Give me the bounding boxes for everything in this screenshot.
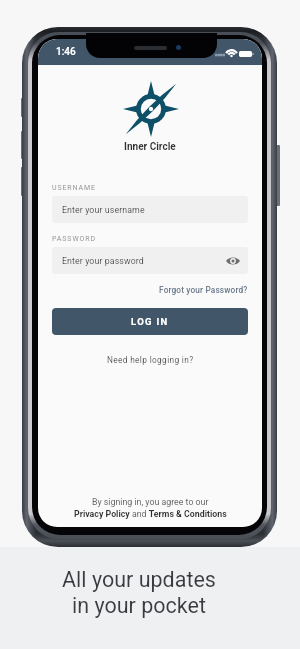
staticText: Inner Circle	[124, 141, 176, 153]
button[interactable]: Enter your password	[52, 247, 248, 274]
staticText: Enter your username	[62, 205, 145, 215]
staticText: PASSWORD	[52, 235, 96, 243]
staticText: USERNAME	[52, 184, 96, 192]
button[interactable]: Need help logging in?	[107, 355, 194, 365]
button[interactable]: Privacy Policy and Terms & Conditions	[74, 509, 227, 519]
staticText: Forgot your Password?	[159, 285, 248, 295]
staticText: All your updates	[62, 567, 216, 592]
button[interactable]: LOG IN	[52, 308, 248, 335]
button[interactable]: Show password	[224, 252, 242, 270]
staticText: Need help logging in?	[107, 355, 194, 365]
staticText: in your pocket	[72, 593, 206, 618]
staticText: By signing in, you agree to our	[92, 497, 209, 507]
staticText: LOG IN	[131, 316, 169, 327]
staticText: Privacy Policy and Terms & Conditions	[74, 509, 227, 519]
staticText: Enter your password	[62, 256, 144, 266]
staticText: 1:46	[56, 46, 76, 58]
button[interactable]: Forgot your Password?	[159, 285, 248, 295]
button[interactable]: Enter your username	[52, 196, 248, 223]
